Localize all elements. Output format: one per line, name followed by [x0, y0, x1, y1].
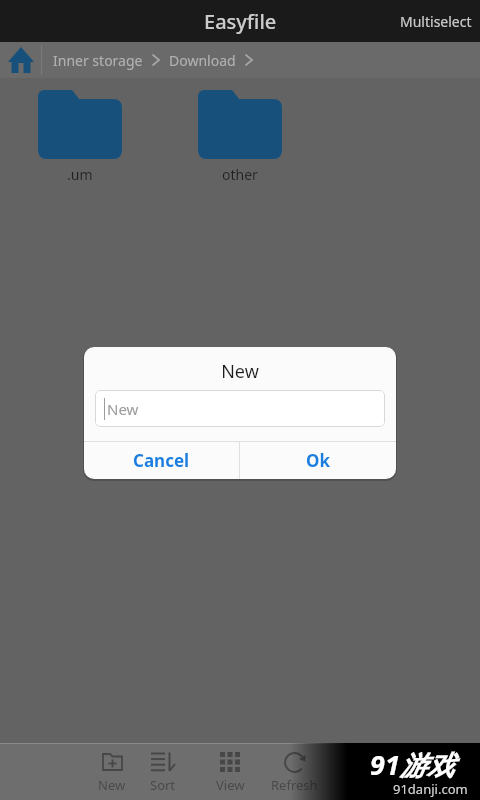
staticText: Inner storage — [53, 51, 143, 70]
staticText: 91danji.com — [393, 780, 468, 798]
staticText: Ok — [306, 449, 330, 472]
button[interactable]: View — [200, 752, 260, 800]
button[interactable]: Sort — [133, 752, 193, 800]
button[interactable]: Download — [169, 51, 236, 70]
staticText: Sort — [150, 776, 176, 794]
staticText: New — [84, 359, 396, 384]
staticText: New — [107, 399, 139, 419]
staticText: New — [98, 776, 126, 794]
button[interactable]: Refresh — [264, 752, 324, 800]
staticText: .um — [67, 165, 93, 184]
staticText: Easyfile — [204, 8, 277, 35]
button[interactable]: Multiselect — [400, 0, 480, 42]
staticText: Refresh — [271, 776, 318, 794]
staticText: Multiselect — [400, 12, 472, 31]
button[interactable]: Inner storage — [53, 51, 143, 70]
staticText: Cancel — [133, 449, 190, 472]
button[interactable]: Cancel — [84, 442, 239, 479]
staticText: Download — [169, 51, 236, 70]
button[interactable]: New — [95, 390, 385, 427]
staticText: 91游戏 — [370, 746, 454, 783]
button[interactable]: other — [160, 90, 320, 184]
staticText: View — [216, 776, 245, 794]
button[interactable] — [0, 42, 41, 78]
button[interactable]: Ok — [240, 442, 396, 479]
button[interactable]: New — [82, 752, 142, 800]
button[interactable]: .um — [0, 90, 160, 184]
staticText: other — [222, 165, 258, 184]
